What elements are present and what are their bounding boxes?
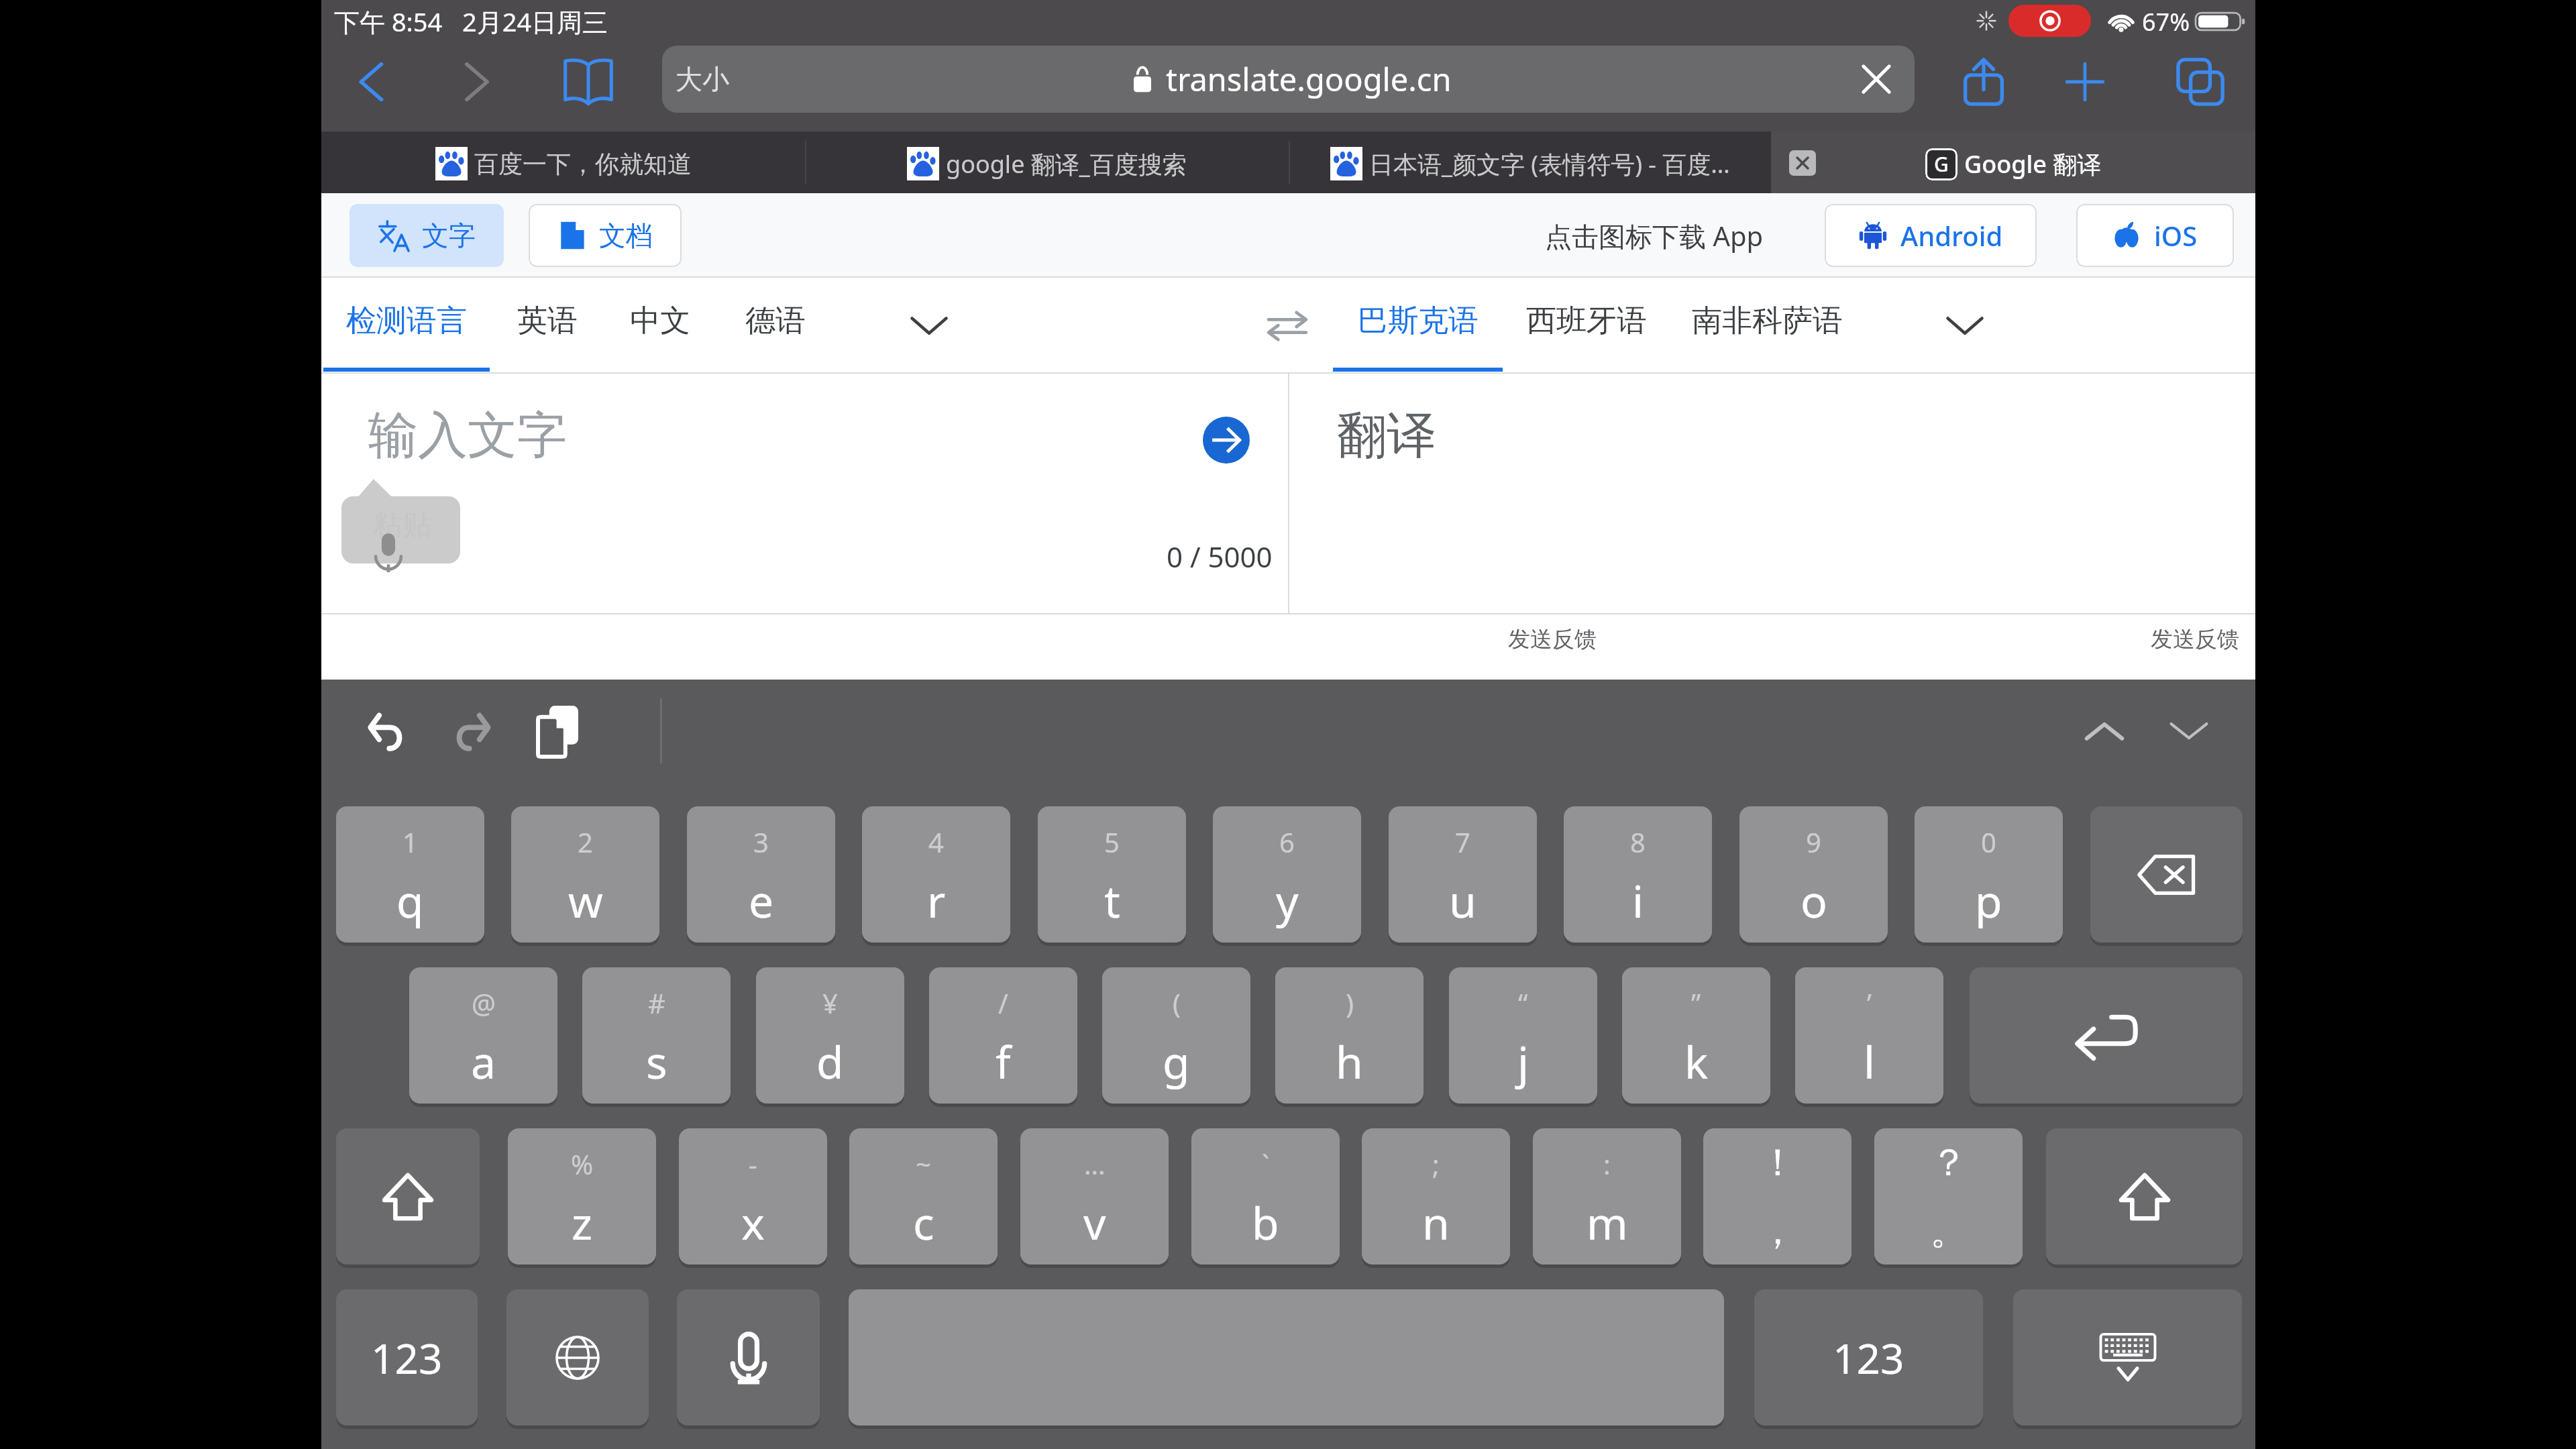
button[interactable]: Space — [849, 1289, 1724, 1426]
staticText: ( — [1173, 985, 1181, 1021]
staticText: t — [1104, 870, 1120, 930]
button[interactable]: 发送反馈 — [2151, 625, 2239, 653]
staticText: u — [1449, 870, 1477, 930]
button[interactable]: Share — [1945, 43, 2023, 121]
button[interactable]: Show tabs — [2161, 43, 2239, 121]
button[interactable]: ¥ — [756, 967, 904, 1104]
staticText: 。 — [1930, 1207, 1968, 1255]
button[interactable]: google 翻译_百度搜索 — [805, 131, 1289, 193]
button[interactable]: - — [679, 1128, 827, 1265]
button[interactable]: ) — [1275, 967, 1424, 1104]
button[interactable]: Return — [1970, 967, 2243, 1104]
button[interactable]: Backspace — [2090, 806, 2243, 943]
button[interactable]: 英语 — [490, 278, 604, 374]
button[interactable]: Dictation — [677, 1289, 820, 1426]
button[interactable]: 4 — [862, 806, 1010, 943]
button[interactable]: / — [929, 967, 1077, 1104]
staticText: o — [1801, 870, 1827, 930]
staticText: ？ — [1930, 1139, 1968, 1187]
button[interactable]: Shift — [2046, 1128, 2243, 1265]
staticText: a — [471, 1031, 496, 1091]
button[interactable]: New tab — [2049, 46, 2121, 118]
button[interactable]: Close tab — [1789, 150, 1816, 176]
button[interactable]: ˋ — [1191, 1128, 1340, 1265]
button[interactable]: ” — [1622, 967, 1770, 1104]
button[interactable]: Bookmarks — [547, 41, 629, 123]
staticText: 4 — [928, 824, 944, 860]
staticText: j — [1517, 1031, 1529, 1091]
button[interactable]: Swap languages — [1237, 278, 1338, 374]
button[interactable]: … — [1020, 1128, 1169, 1265]
button[interactable]: ’ — [1795, 967, 1943, 1104]
button[interactable]: Switch keyboard language — [506, 1289, 649, 1426]
staticText: ˋ — [1262, 1146, 1270, 1182]
button[interactable]: Next field — [2151, 694, 2226, 769]
staticText: @ — [472, 985, 496, 1021]
button[interactable]: Hide keyboard — [2013, 1289, 2242, 1426]
button[interactable]: 2 — [511, 806, 659, 943]
staticText: 巴斯克语 — [1358, 302, 1479, 340]
button[interactable]: Redo — [435, 694, 510, 769]
staticText: 67% — [2142, 5, 2190, 38]
button[interactable]: 发送反馈 — [1508, 625, 1597, 653]
button[interactable]: Translate — [1203, 417, 1250, 464]
staticText: G — [1934, 150, 1949, 178]
button[interactable]: Undo — [349, 694, 424, 769]
button[interactable]: iOS — [2076, 204, 2234, 267]
button[interactable]: % — [508, 1128, 656, 1265]
staticText: 粘贴 — [373, 506, 432, 543]
button[interactable]: 日本语_颜文字 (表情符号) - 百度… — [1289, 131, 1771, 193]
staticText: 大小 — [676, 62, 729, 96]
button[interactable]: @ — [409, 967, 557, 1104]
staticText: 文档 — [599, 219, 653, 252]
button[interactable]: 百度一下，你就知道 — [321, 131, 805, 193]
button[interactable]: Shift — [336, 1128, 480, 1265]
staticText: ， — [1759, 1207, 1796, 1255]
staticText: k — [1684, 1031, 1709, 1091]
button[interactable]: Android — [1825, 204, 2037, 267]
button[interactable]: ; — [1362, 1128, 1510, 1265]
button[interactable]: # — [582, 967, 731, 1104]
button[interactable]: ~ — [849, 1128, 998, 1265]
button[interactable]: 文字 — [350, 204, 504, 267]
button[interactable]: Back — [335, 45, 409, 119]
button[interactable]: 6 — [1213, 806, 1361, 943]
button[interactable]: 9 — [1739, 806, 1888, 943]
button[interactable]: More source languages — [865, 278, 993, 374]
button[interactable]: Paste — [521, 694, 596, 769]
button[interactable]: 大小 — [662, 46, 1915, 113]
button[interactable]: 0 — [1915, 806, 2063, 943]
button[interactable]: 123 — [1754, 1289, 1983, 1426]
button[interactable]: 巴斯克语 — [1333, 278, 1503, 374]
button[interactable]: 8 — [1564, 806, 1712, 943]
button[interactable]: 西班牙语 — [1503, 278, 1670, 374]
staticText: 德语 — [745, 302, 806, 340]
button[interactable]: 7 — [1389, 806, 1537, 943]
button[interactable]: ( — [1102, 967, 1250, 1104]
button[interactable]: 南非科萨语 — [1670, 278, 1864, 374]
button[interactable]: More target languages — [1901, 278, 2029, 374]
button[interactable]: 5 — [1038, 806, 1186, 943]
button[interactable]: Forward — [439, 45, 513, 119]
button[interactable]: 123 — [336, 1289, 478, 1426]
button[interactable]: ！ — [1703, 1128, 1851, 1265]
staticText: h — [1336, 1031, 1363, 1091]
button[interactable]: ？ — [1874, 1128, 2023, 1265]
staticText: 百度一下，你就知道 — [474, 149, 692, 179]
button[interactable]: 1 — [336, 806, 484, 943]
button[interactable]: 检测语言 — [323, 278, 490, 374]
staticText: z — [572, 1192, 593, 1252]
staticText: iOS — [2154, 217, 2198, 254]
button[interactable]: 中文 — [604, 278, 715, 374]
button[interactable]: Stop loading — [1856, 58, 1897, 100]
staticText: 3 — [753, 824, 769, 860]
button[interactable]: : — [1533, 1128, 1681, 1265]
button[interactable]: Previous field — [2067, 694, 2142, 769]
button[interactable]: 文档 — [529, 204, 682, 267]
button[interactable]: 3 — [687, 806, 835, 943]
button[interactable]: 德语 — [715, 278, 835, 374]
button[interactable]: “ — [1449, 967, 1597, 1104]
staticText: n — [1422, 1192, 1450, 1252]
button[interactable]: G — [1771, 131, 2255, 193]
staticText: 5 — [1104, 824, 1120, 860]
